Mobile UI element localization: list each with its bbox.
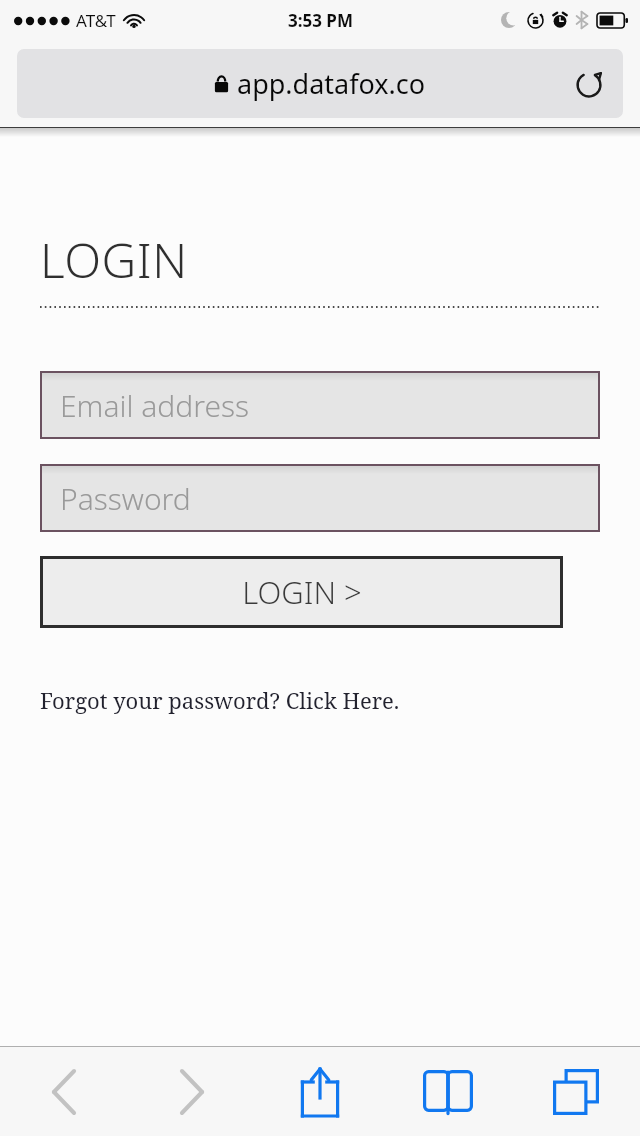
button[interactable]: Password — [40, 464, 600, 532]
staticText: LOGIN — [40, 227, 188, 292]
button[interactable]: Tabs — [512, 1047, 640, 1136]
button[interactable]: Reload — [567, 62, 611, 106]
staticText: 3:53 PM — [288, 9, 353, 32]
staticText: app.datafox.co — [237, 65, 426, 102]
staticText: Email address — [60, 385, 250, 426]
staticText: LOGIN > — [242, 571, 362, 613]
button[interactable]: Email address — [40, 371, 600, 439]
button[interactable]: app.datafox.co — [17, 49, 623, 118]
button[interactable]: Bookmarks — [384, 1047, 512, 1136]
staticText: Forgot your password? Click Here. — [40, 685, 400, 715]
button[interactable]: Forward — [128, 1047, 256, 1136]
button[interactable]: Share — [256, 1047, 384, 1136]
button[interactable]: Back — [0, 1047, 128, 1136]
button[interactable]: LOGIN > — [40, 556, 563, 628]
button[interactable]: Forgot your password? Click Here. — [40, 685, 400, 715]
staticText: Password — [60, 478, 191, 519]
staticText: AT&T — [76, 9, 116, 32]
